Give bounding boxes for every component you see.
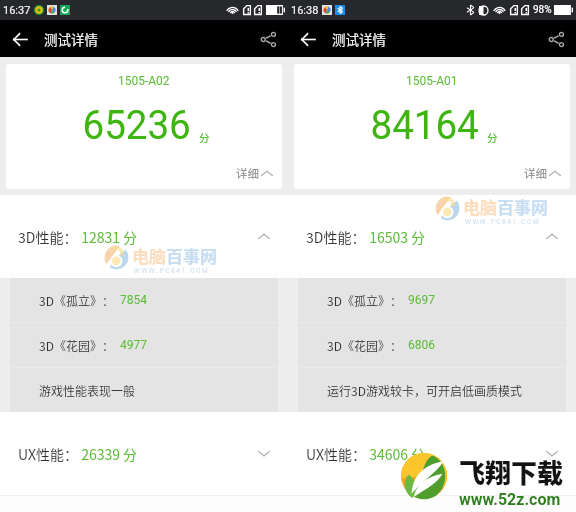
staticText: UX性能：: [18, 444, 78, 464]
button[interactable]: 3D《花园》：: [327, 323, 566, 367]
button[interactable]: 3D《孤立》：: [39, 278, 278, 322]
staticText: 3D性能：: [306, 227, 366, 247]
staticText: 1505-A01: [406, 74, 458, 88]
staticText: 测试详情: [44, 29, 98, 49]
staticText: 游戏性能表现一般: [39, 382, 136, 399]
button[interactable]: Back: [6, 25, 34, 53]
staticText: 百事网: [497, 194, 548, 219]
staticText: 详细: [236, 165, 259, 182]
button[interactable]: 3D《花园》：: [39, 323, 278, 367]
staticText: 详细: [524, 165, 547, 182]
staticText: 3D《孤立》：: [39, 292, 114, 309]
staticText: 百事网: [166, 243, 217, 268]
staticText: 12831 分: [78, 227, 138, 247]
staticText: UX性能：: [306, 444, 366, 464]
staticText: 4977: [120, 338, 147, 352]
staticText: 飞翔下载: [459, 453, 564, 491]
button[interactable]: 1505-A01: [294, 64, 570, 189]
staticText: 26339 分: [78, 444, 138, 464]
button[interactable]: 3D《孤立》：: [327, 278, 566, 322]
staticText: www.52z.com: [459, 490, 561, 509]
staticText: 测试详情: [332, 29, 386, 49]
button[interactable]: 3D性能：: [288, 195, 576, 278]
staticText: 9697: [408, 293, 435, 307]
staticText: 65236: [82, 101, 191, 149]
staticText: 84164: [370, 101, 479, 149]
staticText: 1505-A02: [118, 74, 170, 88]
staticText: W W W . P C 8 4 1 . C O M: [134, 267, 208, 275]
staticText: W W W . P C 8 4 1 . C O M: [465, 218, 539, 226]
staticText: 16:37: [3, 4, 31, 17]
staticText: 3D性能：: [18, 227, 78, 247]
staticText: 分: [487, 130, 498, 145]
staticText: 电脑: [463, 194, 497, 219]
staticText: 34606 分: [366, 444, 426, 464]
staticText: 16503 分: [366, 227, 426, 247]
button[interactable]: 详细: [236, 165, 273, 182]
button[interactable]: 3D性能：: [0, 195, 288, 278]
staticText: 16:38: [291, 4, 319, 17]
staticText: 3D《花园》：: [327, 337, 402, 354]
staticText: 分: [199, 130, 210, 145]
staticText: 运行3D游戏较卡，可开启低画质模式: [327, 382, 522, 399]
button[interactable]: Share: [542, 25, 570, 53]
staticText: 电脑: [132, 243, 166, 268]
button[interactable]: Back: [294, 25, 322, 53]
staticText: 7854: [120, 293, 147, 307]
staticText: 98%: [533, 4, 552, 16]
staticText: 3D《花园》：: [39, 337, 114, 354]
button[interactable]: Share: [254, 25, 282, 53]
button[interactable]: UX性能：: [288, 412, 576, 495]
button[interactable]: 1505-A02: [6, 64, 282, 189]
button[interactable]: 详细: [524, 165, 561, 182]
staticText: 3D《孤立》：: [327, 292, 402, 309]
staticText: 6806: [408, 338, 435, 352]
button[interactable]: UX性能：: [0, 412, 288, 495]
